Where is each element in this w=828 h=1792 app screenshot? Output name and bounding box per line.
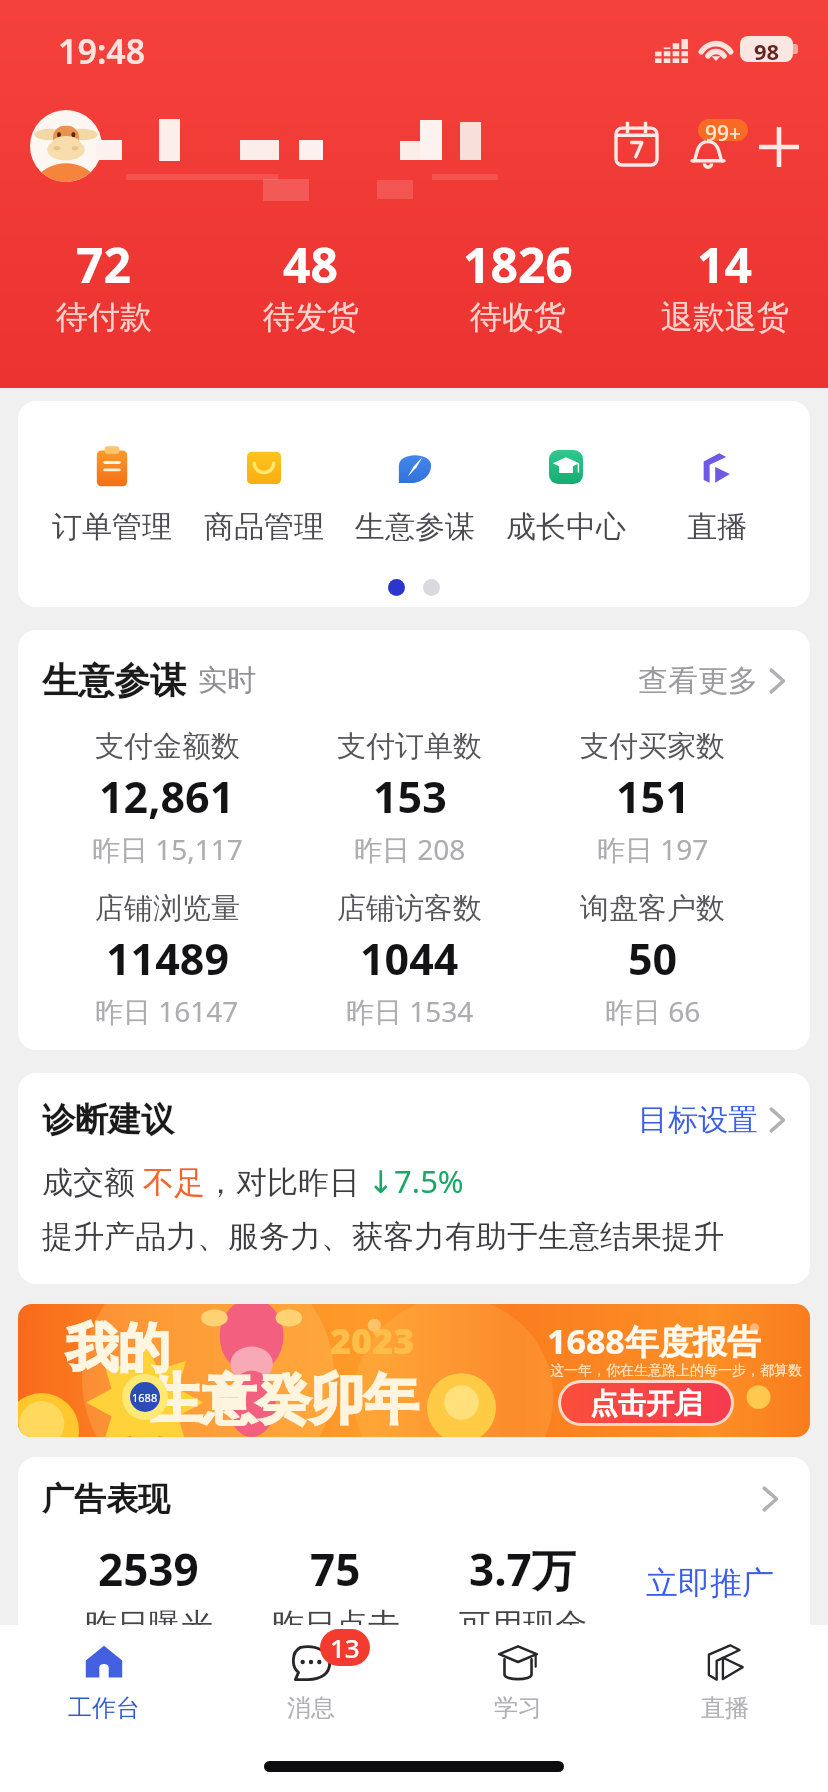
staticText: 12,861 — [99, 767, 235, 826]
staticText: 48 — [283, 232, 338, 297]
button[interactable]: 学习 — [414, 1637, 621, 1723]
staticText: 昨日点击 — [272, 1605, 400, 1645]
button[interactable]: 1688 annual report banner — [18, 1304, 810, 1437]
button[interactable]: 支付金额数 — [46, 728, 288, 868]
staticText: 1826 — [463, 232, 573, 297]
button[interactable]: 订单管理 — [36, 444, 188, 546]
staticText: 直播 — [701, 1693, 749, 1723]
button[interactable]: 75 — [242, 1539, 429, 1645]
staticText: 支付买家数 — [580, 728, 725, 765]
staticText: 立即推广 — [646, 1563, 774, 1603]
staticText: 询盘客户数 — [580, 890, 725, 927]
staticText: 直播 — [687, 508, 747, 546]
button[interactable]: 1826 — [414, 232, 621, 337]
button[interactable]: 直播 — [641, 444, 792, 546]
staticText: 工作台 — [68, 1693, 140, 1723]
staticText: 诊断建议 — [42, 1099, 174, 1141]
staticText: 昨日曝光 — [85, 1605, 213, 1645]
staticText: 11489 — [106, 929, 229, 988]
staticText: 14 — [697, 232, 752, 297]
button[interactable]: 工作台 — [0, 1637, 207, 1723]
staticText: 商品管理 — [204, 508, 324, 546]
staticText: 3.7万 — [469, 1539, 576, 1599]
button[interactable]: 48 — [207, 232, 414, 337]
button[interactable]: 14 — [621, 232, 828, 337]
button[interactable]: 生意参谋 — [339, 444, 490, 546]
staticText: 我的 — [66, 1316, 170, 1382]
button[interactable]: Notifications — [676, 110, 738, 172]
staticText: 153 — [373, 767, 447, 826]
button[interactable]: 询盘客户数 — [531, 890, 774, 1030]
staticText: 昨日 16147 — [95, 992, 239, 1030]
staticText: 昨日 197 — [597, 830, 709, 868]
staticText: 2023 — [330, 1316, 415, 1365]
staticText: 生意癸卯年 — [148, 1366, 418, 1434]
staticText: 待付款 — [56, 297, 152, 337]
staticText: 订单管理 — [52, 508, 172, 546]
staticText: 实时 — [198, 662, 256, 699]
staticText: 成长中心 — [506, 508, 626, 546]
staticText: 昨日 208 — [354, 830, 466, 868]
staticText: 店铺浏览量 — [95, 890, 240, 927]
button[interactable]: 72 — [0, 232, 207, 337]
button[interactable]: 直播 — [621, 1637, 828, 1723]
staticText: 75 — [310, 1539, 361, 1599]
staticText: 提升产品力、服务力、获客力有助于生意结果提升 — [42, 1217, 724, 1256]
staticText: 151 — [616, 767, 690, 826]
staticText: 待发货 — [263, 297, 359, 337]
button[interactable]: Add — [750, 118, 808, 176]
staticText: 支付订单数 — [337, 728, 482, 765]
button[interactable]: 3.7万 — [429, 1539, 616, 1645]
staticText: 1688 — [132, 1390, 158, 1405]
staticText: 2539 — [98, 1539, 199, 1599]
staticText: 退款退货 — [661, 297, 789, 337]
staticText: 查看更多 — [638, 662, 758, 700]
staticText: 广告表现 — [42, 1479, 170, 1519]
button[interactable]: 13 — [207, 1637, 414, 1723]
staticText: 成交额 不足，对比昨日 ↓7.5% — [42, 1160, 464, 1202]
staticText: 昨日 15,117 — [92, 830, 243, 868]
button[interactable]: 商品管理 — [188, 444, 339, 546]
staticText: 待收货 — [470, 297, 566, 337]
button[interactable]: Shop profile — [30, 110, 102, 182]
staticText: 生意参谋 — [355, 508, 475, 546]
button[interactable]: 店铺浏览量 — [46, 890, 288, 1030]
staticText: 点击开启 — [590, 1386, 702, 1421]
button[interactable]: 支付订单数 — [288, 728, 531, 868]
staticText: 1688年度报告 — [547, 1318, 761, 1364]
staticText: 98 — [754, 36, 780, 62]
staticText: 目标设置 — [638, 1101, 758, 1139]
staticText: 可用现金 — [459, 1605, 587, 1645]
button[interactable]: 点击开启 — [561, 1383, 731, 1423]
button[interactable]: 店铺访客数 — [288, 890, 531, 1030]
staticText: 消息 — [287, 1693, 335, 1723]
button[interactable]: 查看更多 — [638, 662, 786, 700]
staticText: 支付金额数 — [95, 728, 240, 765]
button[interactable]: 2539 — [55, 1539, 242, 1645]
staticText: 99+ — [705, 119, 742, 141]
staticText: 学习 — [494, 1693, 542, 1723]
staticText: 1044 — [360, 929, 459, 988]
staticText: 店铺访客数 — [337, 890, 482, 927]
staticText: 昨日 1534 — [346, 992, 474, 1030]
staticText: 生意参谋 — [42, 658, 186, 703]
button[interactable]: 立即推广 — [616, 1563, 803, 1603]
button[interactable]: 成长中心 — [490, 444, 641, 546]
staticText: 19:48 — [58, 28, 146, 74]
button[interactable]: 支付买家数 — [531, 728, 774, 868]
button[interactable]: Calendar — [606, 112, 666, 172]
staticText: 50 — [628, 929, 678, 988]
button[interactable]: More ad details — [750, 1479, 790, 1519]
staticText: 13 — [330, 1630, 360, 1665]
button[interactable]: 目标设置 — [638, 1101, 786, 1139]
staticText: 72 — [76, 232, 131, 297]
staticText: 昨日 66 — [605, 992, 701, 1030]
staticText: 这一年，你在生意路上的每一步，都算数 — [550, 1362, 802, 1380]
